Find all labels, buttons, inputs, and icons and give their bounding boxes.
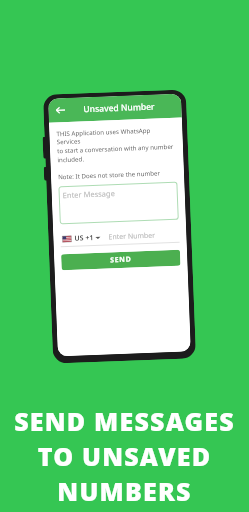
button[interactable]: SEND (61, 250, 180, 270)
button[interactable]: US +1 (60, 233, 103, 244)
staticText: TO UNSAVED (10, 439, 239, 473)
staticText: Note: It Does not store the number (58, 168, 161, 180)
button[interactable]: Enter Number (108, 230, 179, 242)
staticText: SEND MESSAGES (10, 404, 239, 438)
staticText: Enter Number (108, 231, 155, 242)
staticText: Enter Message (63, 188, 116, 200)
staticText: US +1 (74, 233, 94, 244)
button[interactable]: Enter Message (58, 182, 179, 224)
staticText: SEND (110, 255, 131, 265)
staticText: NUMBERS (10, 474, 239, 508)
staticText: THIS Application uses WhatsApp Services … (56, 125, 176, 163)
button[interactable]: Back (51, 101, 70, 119)
staticText: Unsaved Number (83, 100, 156, 115)
